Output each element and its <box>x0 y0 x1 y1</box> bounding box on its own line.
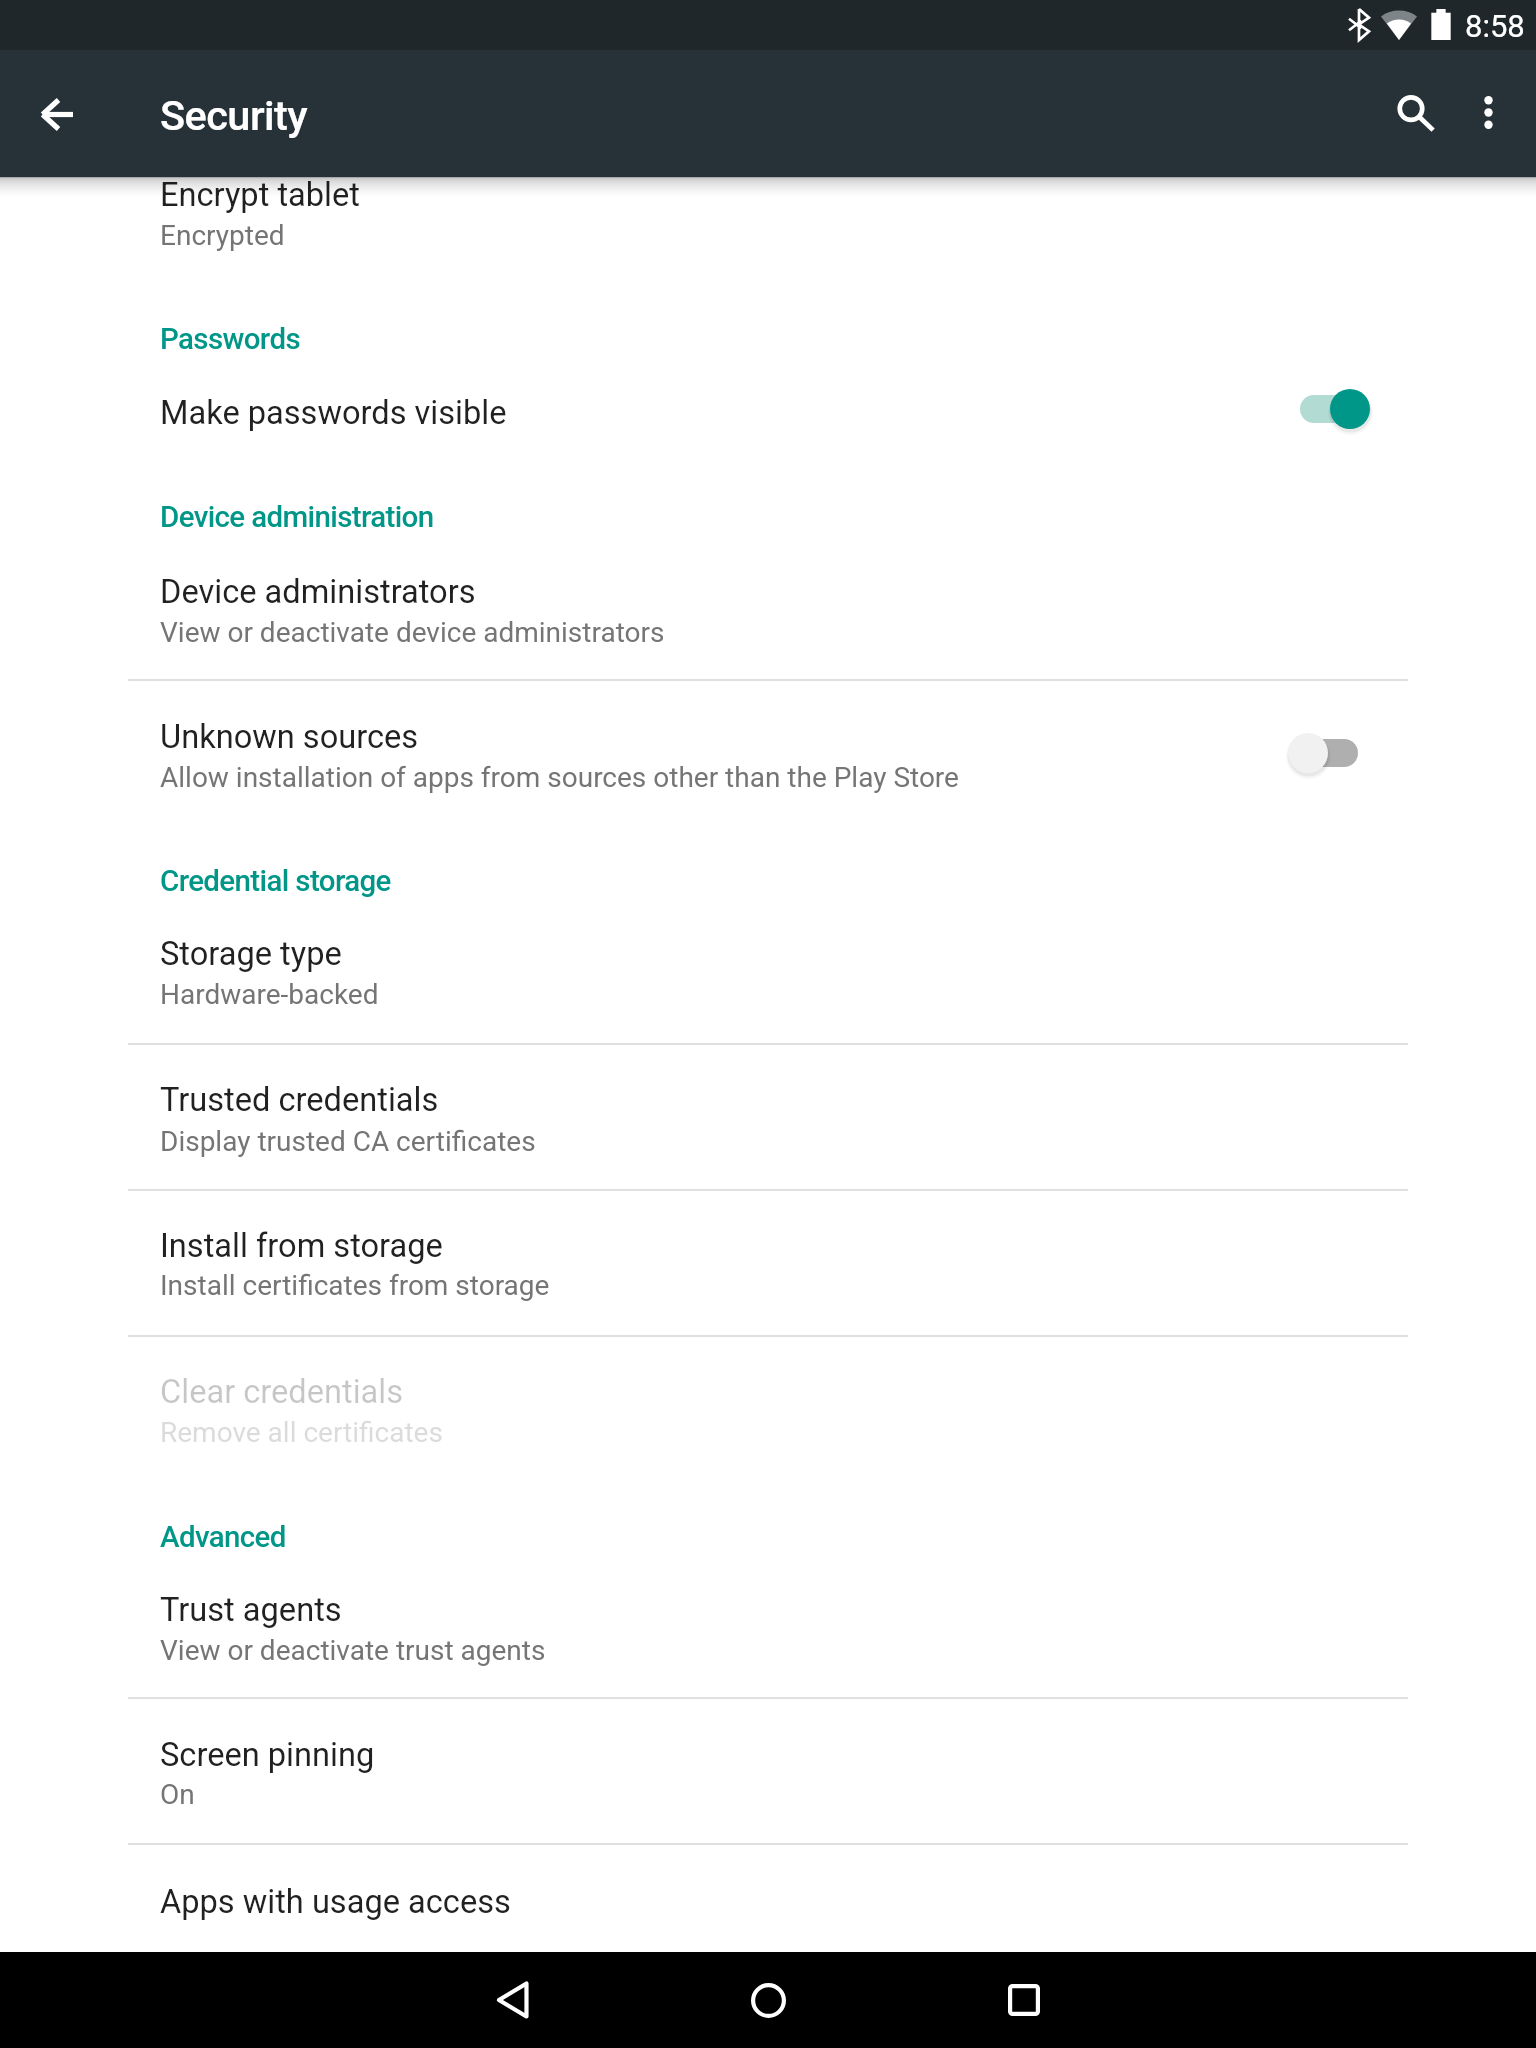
staticText: Security <box>160 91 308 140</box>
staticText: Trust agents <box>160 1591 342 1629</box>
staticText: Screen pinning <box>160 1736 375 1774</box>
button[interactable]: Search <box>1375 53 1455 133</box>
staticText: Allow installation of apps from sources … <box>160 761 959 794</box>
staticText: Encrypt tablet <box>160 176 360 214</box>
button[interactable]: Make passwords visible <box>0 368 1536 486</box>
button[interactable]: Toggle on <box>1272 363 1386 455</box>
staticText: View or deactivate device administrators <box>160 616 665 649</box>
staticText: Make passwords visible <box>160 394 507 432</box>
staticText: Trusted credentials <box>160 1081 439 1119</box>
button[interactable]: Navigate up <box>16 74 96 154</box>
button[interactable]: Trust agents <box>0 1551 1536 1697</box>
staticText: View or deactivate trust agents <box>160 1634 546 1667</box>
button[interactable]: Screen pinning <box>0 1699 1536 1843</box>
button[interactable]: Install from storage <box>0 1191 1536 1335</box>
button[interactable]: Encrypt tablet <box>0 148 1536 300</box>
staticText: Apps with usage access <box>160 1883 511 1921</box>
staticText: Advanced <box>160 1520 286 1555</box>
button[interactable]: Toggle off <box>1272 707 1386 799</box>
staticText: Remove all certificates <box>160 1416 443 1449</box>
staticText: Encrypted <box>160 219 285 252</box>
staticText: Passwords <box>160 322 300 357</box>
staticText: Install from storage <box>160 1227 443 1265</box>
staticText: Credential storage <box>160 864 391 899</box>
staticText: Display trusted CA certificates <box>160 1125 536 1158</box>
staticText: Clear credentials <box>160 1373 404 1411</box>
staticText: Hardware-backed <box>160 978 379 1011</box>
button[interactable]: Apps with usage access <box>0 1845 1536 1955</box>
button[interactable]: Back <box>464 1952 560 2048</box>
button[interactable]: Unknown sources <box>0 681 1536 827</box>
button[interactable]: Storage type <box>0 897 1536 1043</box>
staticText: Install certificates from storage <box>160 1269 550 1302</box>
button[interactable]: Device administrators <box>0 533 1536 679</box>
button[interactable]: Clear credentials <box>0 1337 1536 1483</box>
staticText: Unknown sources <box>160 718 419 756</box>
staticText: Device administrators <box>160 573 476 611</box>
button[interactable]: More options <box>1448 53 1528 133</box>
button[interactable]: Home <box>720 1952 816 2048</box>
staticText: Storage type <box>160 935 342 973</box>
staticText: On <box>160 1778 195 1811</box>
button[interactable]: Recent apps <box>976 1952 1072 2048</box>
staticText: Device administration <box>160 500 434 535</box>
staticText: 8:58 <box>1465 8 1525 44</box>
button[interactable]: Trusted credentials <box>0 1045 1536 1189</box>
